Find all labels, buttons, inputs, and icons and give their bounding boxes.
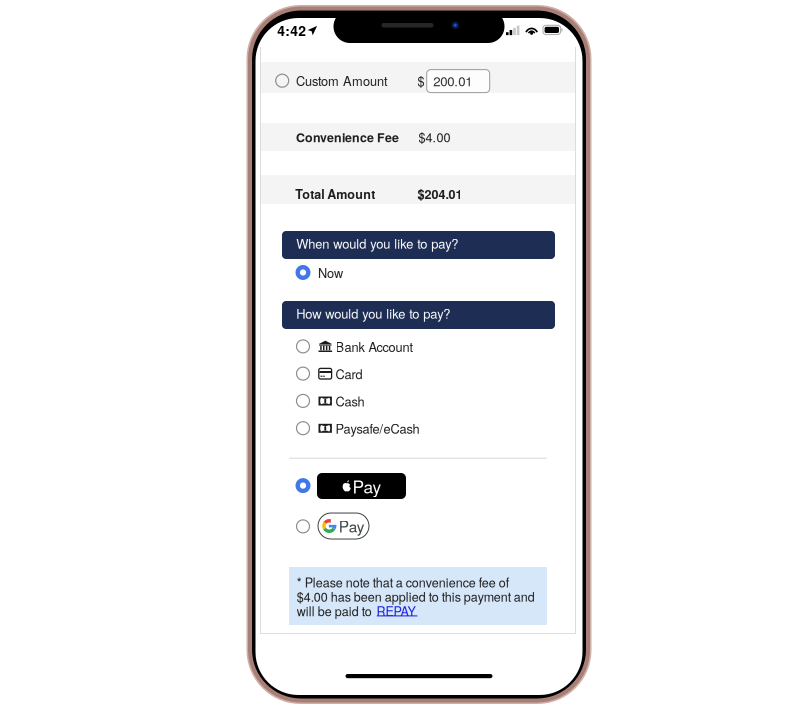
- staticText: $: [417, 71, 424, 90]
- button[interactable]: Cash: [295, 391, 445, 411]
- staticText: REPAY: [376, 602, 415, 620]
- staticText: 200.01: [433, 71, 472, 90]
- staticText: * Please note that a convenience fee of: [297, 573, 509, 591]
- staticText: Bank Account: [336, 337, 414, 355]
- staticText: Pay: [339, 515, 365, 537]
- staticText: Now: [318, 263, 343, 282]
- staticText: When would you like to pay?: [296, 234, 458, 252]
- staticText: $204.01: [417, 185, 462, 203]
- button[interactable]: Paysafe/eCash: [295, 418, 445, 438]
- staticText: Pay: [352, 474, 381, 498]
- button[interactable]: REPAY: [376, 602, 420, 618]
- staticText: How would you like to pay?: [296, 304, 450, 322]
- button[interactable]: Custom Amount: [274, 62, 424, 93]
- staticText: Total Amount: [295, 185, 375, 203]
- staticText: $4.00: [418, 128, 450, 146]
- staticText: will be paid to: [297, 602, 372, 620]
- button[interactable]: Pay with Apple Pay: [317, 473, 406, 499]
- button[interactable]: Pay with Google Pay: [318, 513, 369, 539]
- staticText: Cash: [335, 392, 364, 410]
- staticText: Custom Amount: [296, 71, 388, 90]
- button[interactable]: Card: [295, 364, 445, 384]
- staticText: Paysafe/eCash: [335, 419, 419, 437]
- staticText: Card: [335, 364, 362, 383]
- staticText: $4.00 has been applied to this payment a…: [297, 587, 535, 605]
- button[interactable]: Bank Account: [295, 336, 445, 356]
- staticText: 4:42: [277, 20, 306, 40]
- staticText: Convenience Fee: [296, 128, 399, 146]
- button[interactable]: Now: [295, 262, 365, 282]
